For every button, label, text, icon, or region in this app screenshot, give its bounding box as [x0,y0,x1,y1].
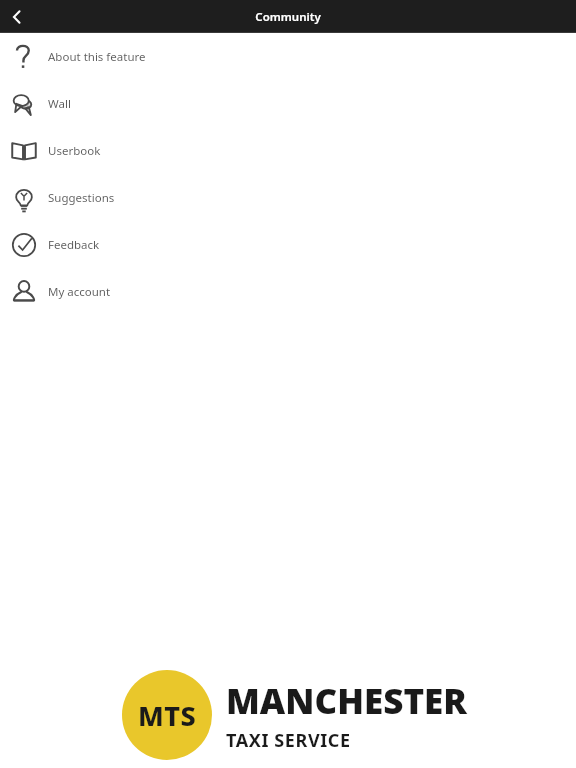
button[interactable]: Suggestions [0,174,576,221]
staticText: Suggestions [48,190,115,206]
button[interactable]: Userbook [0,127,576,174]
staticText: TAXI SERVICE [226,728,351,753]
button[interactable]: Feedback [0,221,576,268]
staticText: My account [48,284,111,300]
staticText: Feedback [48,237,100,253]
button[interactable]: Back [0,0,34,33]
button[interactable]: My account [0,268,576,315]
button[interactable]: Wall [0,80,576,127]
staticText: Wall [48,96,71,112]
staticText: Community [255,9,321,25]
staticText: Userbook [48,143,101,159]
staticText: About this feature [48,49,146,65]
button[interactable]: About this feature [0,33,576,80]
staticText: MANCHESTER [226,677,467,725]
staticText: MTS [138,697,197,734]
